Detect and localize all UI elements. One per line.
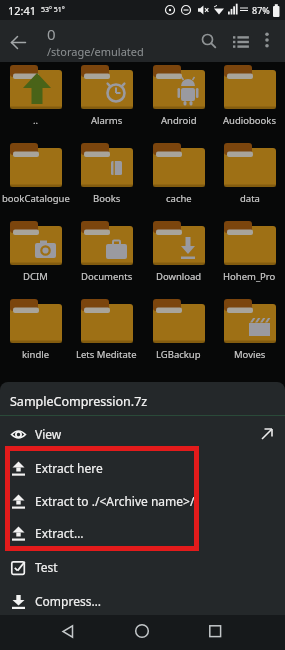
- staticText: 0: [47, 24, 56, 44]
- button[interactable]: [201, 617, 229, 645]
- button[interactable]: cache: [143, 142, 214, 205]
- button[interactable]: Hohem_Pro: [214, 220, 285, 283]
- staticText: 12:41: [8, 3, 37, 18]
- button[interactable]: DCIM: [0, 220, 71, 283]
- button[interactable]: Compress…: [0, 586, 285, 616]
- staticText: kindle: [22, 348, 50, 361]
- button[interactable]: Documents: [71, 220, 142, 283]
- button[interactable]: Download: [143, 220, 214, 283]
- button[interactable]: Extract here: [0, 453, 285, 483]
- staticText: SampleCompression.7z: [10, 393, 148, 410]
- button[interactable]: [5, 29, 31, 55]
- button[interactable]: Movies: [214, 298, 285, 361]
- button[interactable]: data: [214, 142, 285, 205]
- staticText: /storage/emulated: [47, 44, 144, 59]
- staticText: Audiobooks: [223, 114, 276, 127]
- button[interactable]: [227, 27, 255, 55]
- staticText: 53° 51°: [41, 5, 65, 15]
- button[interactable]: Android: [143, 64, 214, 127]
- button[interactable]: ..: [0, 64, 71, 127]
- button[interactable]: [195, 27, 223, 55]
- staticText: DCIM: [23, 270, 48, 283]
- button[interactable]: Extract…: [0, 518, 285, 548]
- staticText: ..: [33, 114, 39, 127]
- button[interactable]: Books: [71, 142, 142, 205]
- staticText: data: [240, 192, 260, 205]
- button[interactable]: kindle: [0, 298, 71, 361]
- button[interactable]: Alarms: [71, 64, 142, 127]
- staticText: Extract…: [35, 525, 84, 541]
- staticText: Test: [35, 559, 58, 575]
- button[interactable]: [128, 617, 156, 645]
- staticText: 87%: [252, 4, 270, 16]
- staticText: Movies: [234, 348, 266, 361]
- staticText: LGBackup: [156, 348, 201, 361]
- staticText: Compress…: [35, 593, 101, 609]
- button[interactable]: [54, 617, 82, 645]
- staticText: bookCatalogue: [2, 192, 70, 205]
- button[interactable]: Lets Meditate: [71, 298, 142, 361]
- button[interactable]: Extract to ./<Archive name>/: [0, 486, 285, 516]
- button[interactable]: [254, 27, 280, 53]
- staticText: Android: [161, 114, 197, 127]
- staticText: Alarms: [91, 114, 123, 127]
- staticText: Documents: [81, 270, 133, 283]
- button[interactable]: 0: [47, 24, 144, 59]
- button[interactable]: LGBackup: [143, 298, 214, 361]
- staticText: Extract to ./<Archive name>/: [35, 493, 195, 509]
- staticText: Extract here: [35, 460, 103, 476]
- staticText: Download: [156, 270, 202, 283]
- button[interactable]: Test: [0, 552, 285, 582]
- button[interactable]: Audiobooks: [214, 64, 285, 127]
- staticText: Lets Meditate: [76, 348, 137, 361]
- staticText: cache: [166, 192, 192, 205]
- staticText: Hohem_Pro: [223, 270, 276, 283]
- staticText: View: [35, 426, 62, 442]
- staticText: Books: [93, 192, 121, 205]
- button[interactable]: bookCatalogue: [0, 142, 71, 205]
- button[interactable]: View: [0, 419, 285, 449]
